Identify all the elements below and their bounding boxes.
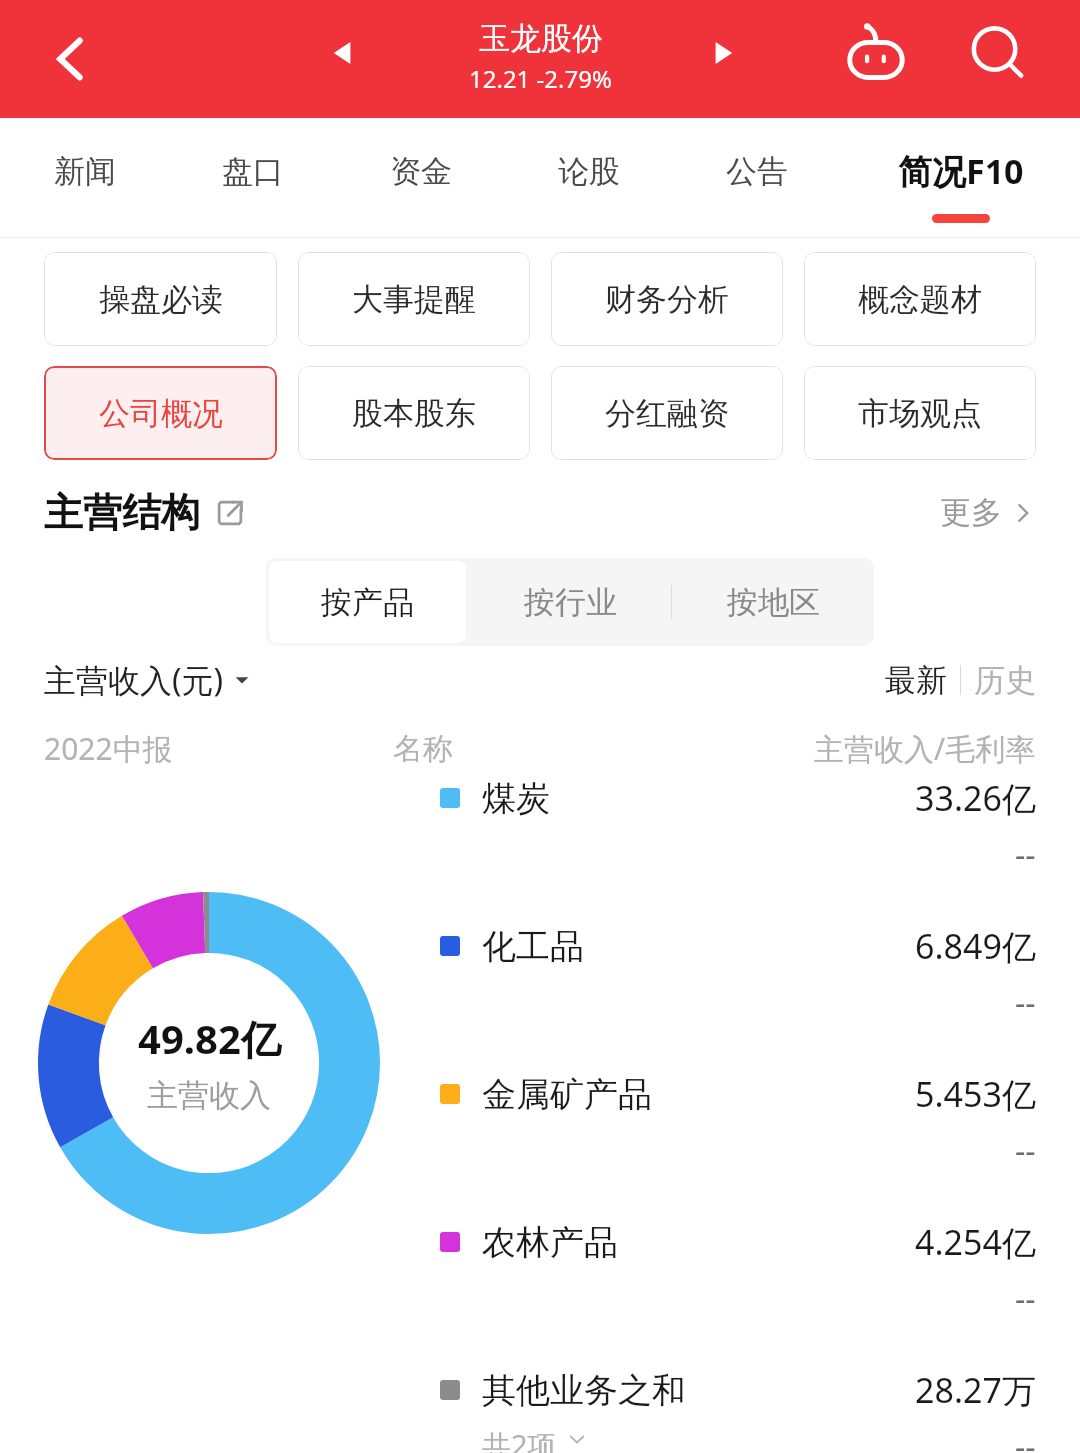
- staticText: 4.254亿: [915, 1219, 1036, 1265]
- staticText: 主营收入(元): [44, 658, 224, 702]
- button[interactable]: 玉龙股份: [469, 19, 612, 95]
- button[interactable]: 盘口: [169, 118, 337, 236]
- staticText: 名称: [393, 730, 453, 768]
- button[interactable]: 金属矿产品: [440, 1071, 1036, 1219]
- button[interactable]: 公告: [673, 118, 841, 236]
- staticText: 按地区: [727, 583, 820, 622]
- staticText: 主营结构: [44, 488, 200, 537]
- staticText: 按行业: [524, 583, 617, 622]
- staticText: 财务分析: [605, 280, 729, 319]
- staticText: 盘口: [222, 152, 284, 191]
- staticText: 历史: [974, 661, 1036, 700]
- staticText: 概念题材: [858, 280, 982, 319]
- staticText: 49.82亿: [138, 1011, 281, 1066]
- staticText: 市场观点: [858, 394, 982, 433]
- staticText: 33.26亿: [915, 775, 1036, 821]
- button[interactable]: 公司概况: [44, 366, 277, 460]
- staticText: 公告: [726, 152, 788, 191]
- staticText: 12.21 -2.79%: [469, 62, 612, 95]
- button[interactable]: 市场观点: [804, 366, 1036, 460]
- staticText: --: [1015, 1129, 1036, 1173]
- staticText: --: [1015, 1277, 1036, 1321]
- staticText: 新闻: [54, 152, 116, 191]
- button[interactable]: Back: [44, 32, 98, 86]
- button[interactable]: 最新: [885, 661, 947, 700]
- button[interactable]: Next stock: [700, 30, 746, 76]
- staticText: 最新: [885, 661, 947, 700]
- staticText: 煤炭: [482, 777, 550, 820]
- staticText: 论股: [558, 152, 620, 191]
- staticText: 玉龙股份: [479, 19, 603, 58]
- button[interactable]: 操盘必读: [44, 252, 277, 346]
- button[interactable]: 按产品: [269, 561, 466, 643]
- button[interactable]: 按地区: [672, 558, 874, 646]
- button[interactable]: 新闻: [0, 118, 169, 236]
- staticText: 共2项: [482, 1425, 557, 1453]
- button[interactable]: 主营收入(元): [44, 658, 252, 702]
- staticText: 股本股东: [352, 394, 476, 433]
- button[interactable]: 煤炭: [440, 775, 1036, 923]
- staticText: 5.453亿: [915, 1071, 1036, 1117]
- button[interactable]: 其他业务之和: [440, 1367, 1036, 1453]
- staticText: 分红融资: [605, 394, 729, 433]
- button[interactable]: 财务分析: [551, 252, 783, 346]
- button[interactable]: 化工品: [440, 923, 1036, 1071]
- staticText: 资金: [390, 152, 452, 191]
- staticText: --: [1015, 833, 1036, 877]
- staticText: 操盘必读: [99, 280, 223, 319]
- button[interactable]: Search: [962, 18, 1036, 92]
- button[interactable]: 农林产品: [440, 1219, 1036, 1367]
- staticText: 简况F10: [898, 148, 1024, 194]
- staticText: 金属矿产品: [482, 1073, 652, 1116]
- button[interactable]: 按行业: [469, 558, 671, 646]
- button[interactable]: 更多: [940, 493, 1036, 532]
- staticText: 更多: [940, 493, 1002, 532]
- other: Revenue breakdown donut chart: [38, 892, 380, 1234]
- staticText: 28.27万: [915, 1367, 1036, 1413]
- other: Open in new: [214, 497, 246, 529]
- button[interactable]: 简况F10: [841, 118, 1080, 236]
- staticText: 其他业务之和: [482, 1369, 686, 1412]
- button[interactable]: AI assistant: [838, 17, 914, 93]
- button[interactable]: 论股: [505, 118, 673, 236]
- button[interactable]: 分红融资: [551, 366, 783, 460]
- staticText: 主营收入/毛利率: [814, 728, 1036, 769]
- staticText: 6.849亿: [915, 923, 1036, 969]
- staticText: 2022中报: [44, 728, 173, 769]
- staticText: 按产品: [321, 583, 414, 622]
- button[interactable]: Previous stock: [320, 30, 366, 76]
- staticText: 大事提醒: [352, 280, 476, 319]
- button[interactable]: 资金: [337, 118, 505, 236]
- staticText: --: [1015, 1425, 1036, 1453]
- staticText: 农林产品: [482, 1221, 618, 1264]
- button[interactable]: 概念题材: [804, 252, 1036, 346]
- staticText: 化工品: [482, 925, 584, 968]
- staticText: 主营收入: [147, 1076, 271, 1115]
- staticText: 公司概况: [99, 394, 223, 433]
- staticText: --: [1015, 981, 1036, 1025]
- button[interactable]: 历史: [974, 661, 1036, 700]
- button[interactable]: 大事提醒: [298, 252, 530, 346]
- button[interactable]: 主营结构: [44, 488, 246, 537]
- button[interactable]: 股本股东: [298, 366, 530, 460]
